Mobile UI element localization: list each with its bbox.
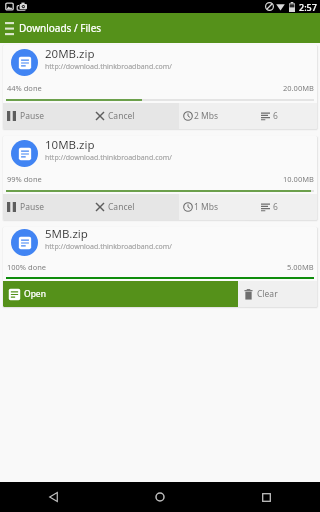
staticText: 6 (273, 110, 278, 122)
button[interactable]: Home (106, 482, 213, 512)
button[interactable]: Pause (3, 103, 91, 129)
button[interactable]: Cancel (91, 194, 179, 220)
button[interactable]: 2 Mbs (179, 103, 256, 129)
button[interactable]: 1 Mbs (179, 194, 256, 220)
staticText: 20MB.zip (45, 46, 95, 62)
button[interactable]: 20MB.zip (3, 45, 317, 129)
button[interactable]: 10MB.zip (3, 136, 317, 220)
staticText: 20.00MB (283, 83, 314, 93)
staticText: 10.00MB (283, 174, 314, 184)
staticText: 6 (273, 201, 278, 213)
staticText: http://download.thinkbroadband.com/ (45, 62, 172, 72)
staticText: 5MB.zip (45, 227, 88, 242)
staticText: Cancel (108, 201, 135, 213)
button[interactable]: Recent apps (213, 482, 320, 512)
staticText: 99% done (7, 174, 42, 184)
button[interactable]: 6 (256, 103, 317, 129)
button[interactable]: 5MB.zip (3, 227, 317, 307)
staticText: 1 Mbs (194, 201, 219, 213)
button[interactable]: Open (3, 281, 238, 307)
staticText: 10MB.zip (45, 137, 95, 153)
button[interactable]: Clear (238, 281, 317, 307)
staticText: 100% done (7, 262, 47, 272)
staticText: 2 Mbs (194, 110, 219, 122)
staticText: 5.00MB (287, 262, 314, 272)
staticText: 44% done (7, 83, 42, 93)
staticText: Open (24, 288, 46, 300)
button[interactable]: 6 (256, 194, 317, 220)
staticText: Downloads / Files (19, 21, 102, 35)
staticText: Clear (257, 288, 278, 300)
staticText: http://download.thinkbroadband.com/ (45, 242, 172, 252)
staticText: http://download.thinkbroadband.com/ (45, 153, 172, 163)
button[interactable]: Cancel (91, 103, 179, 129)
staticText: Pause (20, 110, 45, 122)
button[interactable]: Back (0, 482, 106, 512)
staticText: Pause (20, 201, 45, 213)
button[interactable]: Pause (3, 194, 91, 220)
staticText: Cancel (108, 110, 135, 122)
button[interactable]: Open navigation drawer (0, 13, 18, 43)
staticText: 2:57 (299, 1, 317, 13)
